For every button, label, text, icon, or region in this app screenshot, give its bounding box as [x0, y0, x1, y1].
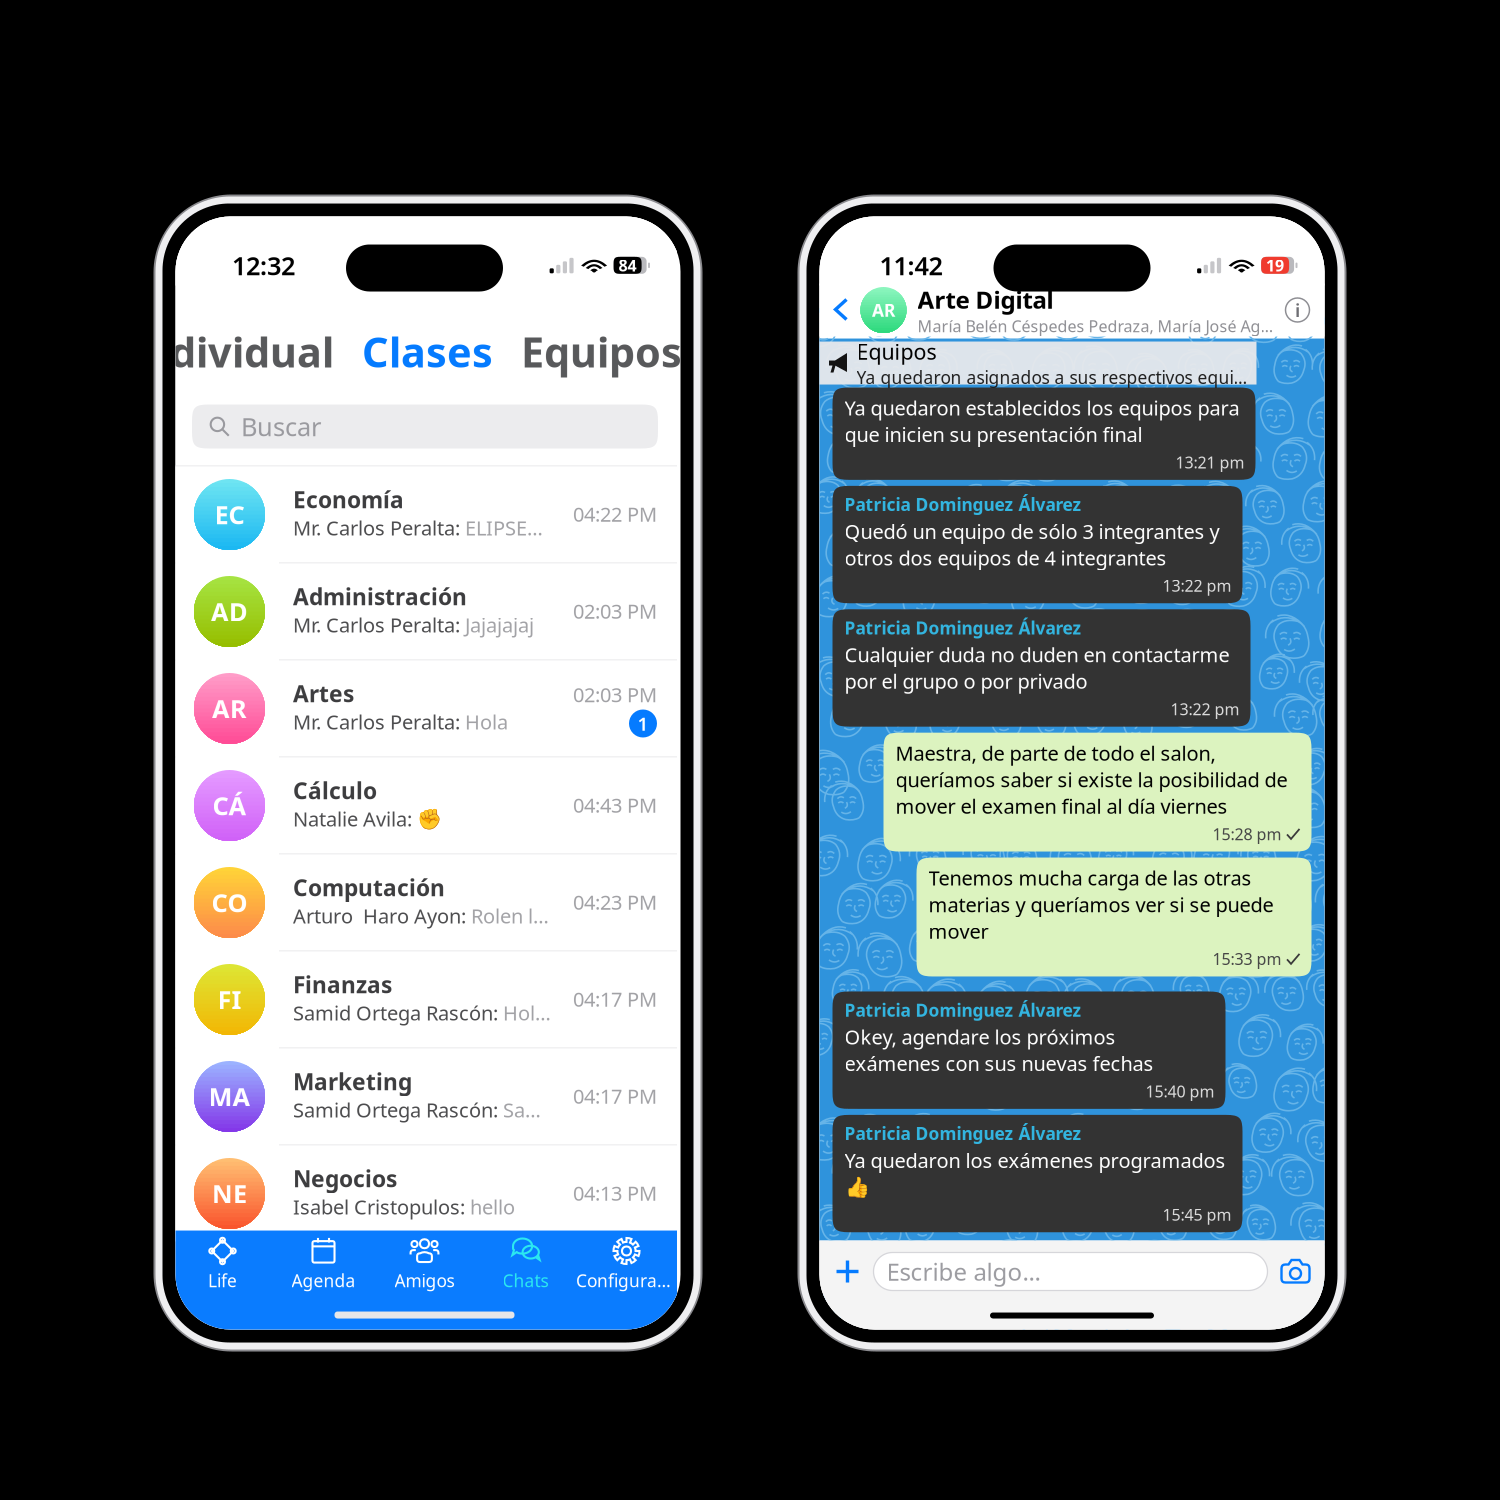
staticText: ✊ [417, 807, 442, 830]
staticText: dividual [170, 324, 334, 379]
staticText: 1 [637, 711, 648, 736]
button[interactable]: Chat info [1282, 295, 1324, 325]
staticText: Patricia Dominguez Álvarez [844, 998, 1081, 1021]
staticText: Patricia Dominguez Álvarez [844, 616, 1081, 639]
staticText: Mr. Carlos Peralta: [293, 514, 465, 541]
staticText: Natalie Avila: [293, 805, 417, 832]
staticText: ELIPSE… [465, 514, 543, 541]
staticText: Samid Ortega Rascón: [293, 999, 503, 1026]
staticText: 12:32 [232, 248, 295, 282]
button[interactable]: CÁ [172, 757, 677, 853]
staticText: i [1295, 298, 1300, 322]
staticText: Negocios [293, 1163, 397, 1193]
staticText: Arte Digital [917, 283, 1053, 315]
staticText: AD [211, 595, 248, 628]
staticText: AR [872, 298, 895, 321]
staticText: Ya quedaron establecidos los equipos par… [844, 394, 1239, 448]
staticText: Amigos [394, 1269, 454, 1292]
staticText: 04:17 PM [573, 986, 657, 1012]
staticText: Ya quedaron asignados a sus respectivos … [856, 366, 1248, 389]
button[interactable]: Agenda [273, 1231, 374, 1292]
button[interactable]: Chats [475, 1231, 576, 1292]
button[interactable]: Add attachment [819, 1247, 873, 1295]
staticText: Economía [293, 484, 404, 514]
button[interactable]: FI [172, 951, 677, 1047]
staticText: Marketing [293, 1066, 412, 1096]
staticText: Tenemos mucha carga de las otras materia… [928, 865, 1273, 944]
staticText: María Belén Céspedes Pedraza, María José… [917, 315, 1280, 336]
staticText: Configurac… [576, 1269, 677, 1292]
button[interactable]: NE [172, 1145, 677, 1241]
button[interactable]: Amigos [374, 1231, 475, 1292]
button[interactable]: Equipos [819, 341, 1256, 384]
staticText: 04:23 PM [573, 889, 657, 915]
staticText: Quedó un equipo de sólo 3 integrantes y … [844, 518, 1219, 571]
staticText: Escribe algo... [886, 1256, 1040, 1287]
staticText: Maestra, de parte de todo el salon, quer… [895, 740, 1287, 819]
staticText: Hol… [503, 999, 551, 1026]
button[interactable]: CO [172, 854, 677, 950]
staticText: Clases [362, 324, 493, 379]
staticText: Samid Ortega Rascón: [293, 1096, 503, 1123]
staticText: Arturo Haro Ayon: [293, 902, 471, 929]
staticText: Rolen l… [471, 902, 549, 929]
staticText: 04:17 PM [573, 1083, 657, 1109]
staticText: 04:13 PM [573, 1180, 657, 1206]
staticText: Chats [502, 1269, 548, 1292]
staticText: 84 [619, 255, 637, 276]
staticText: Agenda [291, 1269, 355, 1292]
staticText: Computación [293, 872, 445, 902]
staticText: 13:22 pm [1170, 698, 1239, 720]
button[interactable]: Configurac… [576, 1231, 677, 1292]
staticText: 15:28 pm [1212, 823, 1281, 844]
staticText: Equipos [856, 337, 936, 366]
staticText: Finanzas [293, 969, 392, 999]
button[interactable]: AR [172, 660, 677, 756]
staticText: Life [208, 1269, 237, 1292]
staticText: 04:43 PM [573, 792, 657, 818]
staticText: 04:22 PM [573, 501, 657, 527]
staticText: Sa… [503, 1096, 541, 1123]
staticText: AR [212, 692, 247, 725]
staticText: Buscar [241, 410, 321, 443]
staticText: CO [211, 886, 247, 919]
staticText: Jajajajaj [465, 611, 534, 638]
staticText: Mr. Carlos Peralta: [293, 611, 465, 638]
staticText: Ya quedaron los exámenes programados 👍 [844, 1147, 1225, 1200]
staticText: Equipos [521, 324, 682, 379]
staticText: Artes [293, 678, 354, 708]
staticText: Isabel Cristopulos: [293, 1193, 470, 1220]
staticText: Okey, agendare los próximos exámenes con… [844, 1023, 1153, 1077]
staticText: CÁ [212, 789, 246, 822]
button[interactable]: AD [172, 563, 677, 659]
staticText: Hola [465, 708, 508, 735]
staticText: hello [470, 1193, 515, 1220]
button[interactable]: Life [172, 1231, 273, 1292]
staticText: 19 [1266, 255, 1284, 276]
staticText: Cálculo [293, 775, 377, 805]
button[interactable]: Camera [1267, 1258, 1324, 1284]
staticText: 15:40 pm [1145, 1081, 1214, 1102]
staticText: 13:21 pm [1175, 452, 1244, 473]
staticText: NE [212, 1177, 247, 1210]
staticText: 15:33 pm [1212, 948, 1281, 969]
staticText: Patricia Dominguez Álvarez [844, 493, 1081, 516]
staticText: MA [208, 1080, 250, 1113]
button[interactable]: Back [819, 288, 860, 331]
staticText: Mr. Carlos Peralta: [293, 708, 465, 735]
staticText: 02:03 PM [573, 681, 657, 708]
staticText: Cualquier duda no duden en contactarme p… [844, 641, 1229, 694]
button[interactable]: MA [172, 1048, 677, 1144]
button[interactable]: Escribe algo... [873, 1252, 1267, 1290]
staticText: FI [217, 983, 241, 1016]
staticText: Administración [293, 581, 467, 611]
button[interactable]: EC [172, 466, 677, 562]
staticText: 02:03 PM [573, 598, 657, 624]
staticText: EC [214, 498, 244, 531]
staticText: 11:42 [879, 248, 942, 282]
staticText: 13:22 pm [1162, 575, 1231, 596]
staticText: Patricia Dominguez Álvarez [844, 1122, 1081, 1145]
staticText: 15:45 pm [1162, 1204, 1231, 1225]
